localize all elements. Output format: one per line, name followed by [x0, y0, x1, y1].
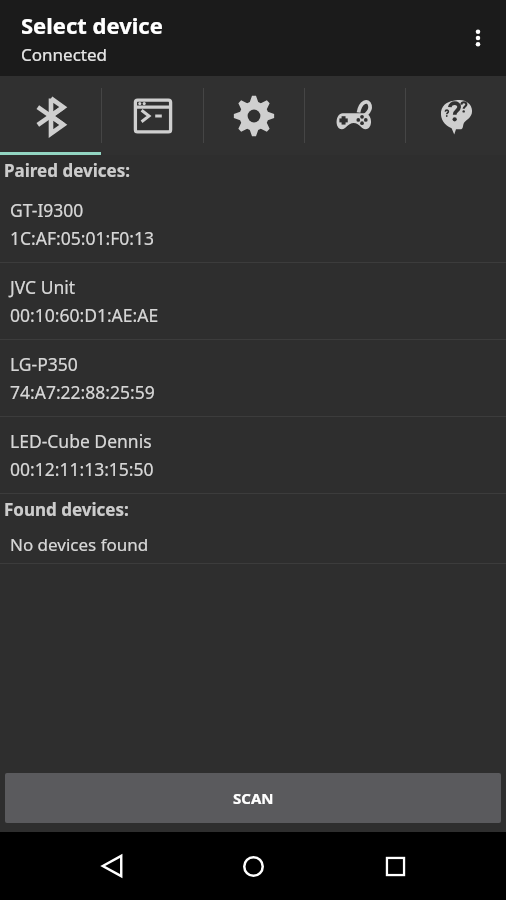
button[interactable]: Settings [204, 76, 304, 155]
staticText: No devices found [10, 533, 149, 556]
staticText: LED-Cube Dennis [10, 429, 152, 453]
button[interactable]: No devices found [0, 525, 506, 563]
button[interactable]: LG-P350 [0, 340, 506, 416]
staticText: Connected [21, 43, 107, 66]
staticText: Found devices: [4, 498, 129, 521]
button[interactable]: Terminal [102, 76, 203, 155]
button[interactable]: Back [82, 836, 142, 896]
button[interactable]: Bluetooth [0, 76, 101, 155]
staticText: Paired devices: [4, 159, 130, 182]
button[interactable]: GT-I9300 [0, 186, 506, 262]
button[interactable]: More options [450, 10, 506, 66]
staticText: LG-P350 [10, 352, 78, 376]
staticText: 00:12:11:13:15:50 [10, 457, 154, 481]
staticText: 74:A7:22:88:25:59 [10, 380, 155, 404]
staticText: Select device [21, 10, 163, 40]
staticText: 00:10:60:D1:AE:AE [10, 303, 159, 327]
button[interactable]: SCAN [5, 773, 501, 823]
staticText: SCAN [233, 788, 274, 808]
button[interactable]: JVC Unit [0, 263, 506, 339]
button[interactable]: Help [406, 76, 506, 155]
staticText: GT-I9300 [10, 198, 84, 222]
staticText: 1C:AF:05:01:F0:13 [10, 226, 154, 250]
staticText: JVC Unit [10, 275, 76, 299]
button[interactable]: LED-Cube Dennis [0, 417, 506, 493]
button[interactable]: Recent apps [365, 836, 425, 896]
button[interactable]: Controller [305, 76, 405, 155]
button[interactable]: Home [223, 836, 283, 896]
